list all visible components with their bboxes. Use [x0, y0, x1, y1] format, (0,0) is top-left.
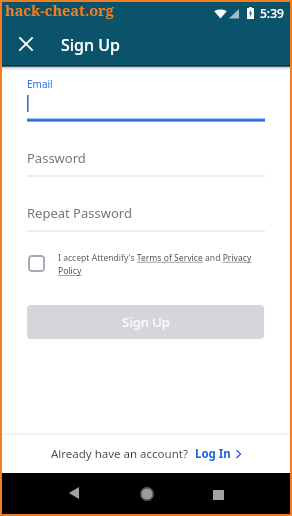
button[interactable]: Accept terms: [28, 255, 45, 272]
button[interactable]: Repeat password input: [27, 202, 265, 234]
staticText: hack-cheat.org: [5, 0, 114, 20]
staticText: I accept Attendify's Terms of Service an…: [58, 252, 266, 277]
staticText: Sign Up: [122, 313, 170, 331]
button[interactable]: Home: [132, 473, 162, 514]
staticText: Repeat Password: [27, 204, 132, 222]
staticText: Email: [27, 77, 53, 91]
button[interactable]: Password input: [27, 147, 265, 179]
button[interactable]: Sign Up: [27, 305, 264, 339]
button[interactable]: Recents: [203, 473, 233, 514]
button[interactable]: Log In: [195, 446, 241, 462]
staticText: Password: [27, 149, 86, 167]
button[interactable]: Back: [59, 473, 89, 514]
button[interactable]: Email input: [27, 75, 265, 123]
staticText: Already have an account?: [51, 446, 188, 462]
staticText: Sign Up: [61, 34, 120, 56]
staticText: Log In: [195, 446, 231, 462]
button[interactable]: Close: [13, 31, 39, 57]
staticText: 5:39: [260, 5, 284, 21]
